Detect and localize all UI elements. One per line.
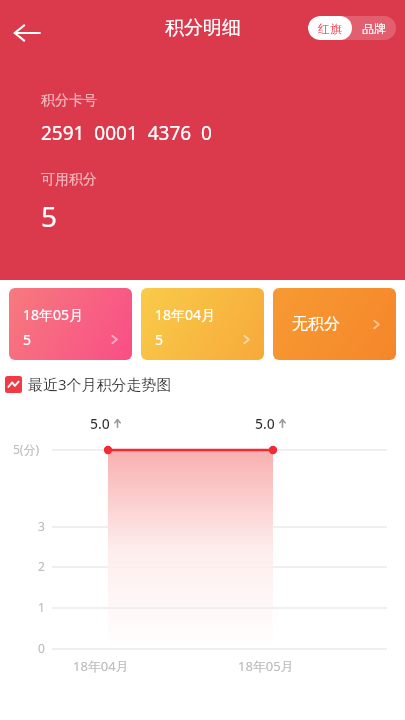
staticText: 最近3个月积分走势图 (28, 374, 172, 394)
staticText: 品牌 (362, 21, 386, 36)
staticText: 18年04月 (155, 305, 216, 324)
button[interactable]: 品牌 (352, 16, 396, 40)
staticText: 5.0 (90, 414, 110, 433)
staticText: 18年05月 (23, 305, 84, 324)
staticText: 18年04月 (73, 657, 129, 675)
button[interactable]: 18年04月 (141, 288, 264, 360)
staticText: 5 (155, 330, 164, 349)
staticText: 无积分 (292, 314, 340, 334)
staticText: 5 (41, 197, 58, 235)
staticText: 1 (38, 599, 45, 615)
staticText: 2591 0001 4376 0 (41, 120, 212, 146)
staticText: 0 (38, 640, 45, 656)
staticText: 18年05月 (238, 657, 294, 675)
button[interactable]: Back (2, 8, 52, 58)
staticText: 积分明细 (165, 16, 241, 40)
staticText: 3 (38, 518, 45, 534)
staticText: 2 (38, 558, 45, 574)
staticText: 5 (23, 330, 32, 349)
button[interactable]: 无积分 (273, 288, 396, 360)
staticText: 可用积分 (41, 171, 97, 189)
staticText: 5.0 (255, 414, 275, 433)
staticText: 红旗 (318, 21, 342, 36)
button[interactable]: 18年05月 (9, 288, 132, 360)
staticText: 积分卡号 (41, 92, 97, 110)
button[interactable]: 红旗 (308, 16, 352, 40)
staticText: 5(分) (13, 441, 40, 457)
